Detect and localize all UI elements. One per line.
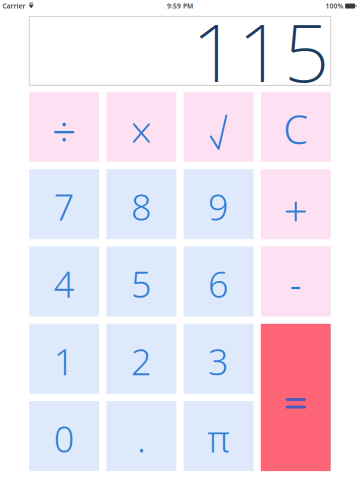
staticText: 2 bbox=[131, 337, 152, 385]
staticText: 100% bbox=[326, 2, 344, 10]
button[interactable]: 8 bbox=[106, 169, 176, 239]
staticText: 5 bbox=[131, 260, 152, 308]
button[interactable]: 5 bbox=[106, 246, 176, 316]
staticText: π bbox=[208, 415, 230, 462]
button[interactable]: Divide bbox=[29, 92, 99, 162]
button[interactable]: 9 bbox=[184, 169, 254, 239]
staticText: 4 bbox=[54, 260, 75, 308]
staticText: 1 bbox=[54, 337, 75, 385]
staticText: C bbox=[283, 102, 308, 155]
staticText: 6 bbox=[208, 260, 229, 308]
button[interactable]: π bbox=[184, 401, 254, 471]
staticText: 115 bbox=[192, 0, 330, 104]
button[interactable]: 0 bbox=[29, 401, 99, 471]
staticText: Carrier bbox=[2, 2, 25, 10]
staticText: 9 bbox=[208, 183, 229, 230]
button[interactable]: Subtract bbox=[261, 246, 331, 316]
button[interactable]: 2 bbox=[106, 324, 176, 394]
button[interactable]: 1 bbox=[29, 324, 99, 394]
button[interactable]: 3 bbox=[184, 324, 254, 394]
staticText: 0 bbox=[54, 415, 75, 462]
button[interactable]: Square root bbox=[184, 92, 254, 162]
button[interactable]: 7 bbox=[29, 169, 99, 239]
button[interactable]: Add bbox=[261, 169, 331, 239]
button[interactable]: . bbox=[106, 401, 176, 471]
staticText: 8 bbox=[131, 183, 152, 230]
staticText: 9:59 PM bbox=[167, 2, 193, 10]
button[interactable]: C bbox=[261, 92, 331, 162]
staticText: 3 bbox=[208, 337, 229, 385]
button[interactable]: 6 bbox=[184, 246, 254, 316]
button[interactable]: 4 bbox=[29, 246, 99, 316]
button[interactable]: Multiply bbox=[106, 92, 176, 162]
staticText: . bbox=[137, 415, 146, 462]
staticText: 7 bbox=[54, 183, 75, 230]
button[interactable]: Equals bbox=[261, 324, 331, 471]
